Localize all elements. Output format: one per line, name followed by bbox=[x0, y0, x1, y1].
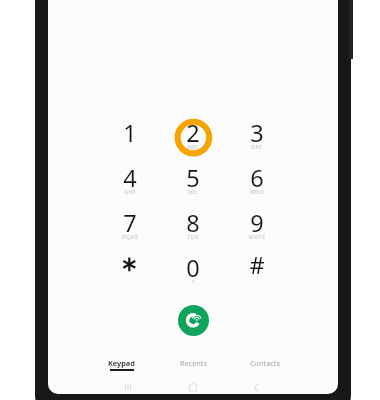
staticText: Recents bbox=[180, 358, 207, 368]
button[interactable]: 0 bbox=[162, 231, 224, 293]
button[interactable]: 3 bbox=[226, 96, 288, 158]
staticText: 6 bbox=[226, 162, 288, 194]
staticText: WXYZ bbox=[226, 233, 288, 241]
staticText: 7 bbox=[99, 207, 161, 239]
button[interactable]: Home bbox=[173, 380, 213, 394]
staticText: DEF bbox=[226, 143, 288, 151]
staticText: TUV bbox=[162, 233, 224, 241]
staticText: JKL bbox=[162, 188, 224, 196]
staticText: 3 bbox=[226, 117, 288, 149]
button[interactable]: Call bbox=[178, 305, 209, 336]
button[interactable]: 4 bbox=[99, 141, 161, 203]
button[interactable]: 9 bbox=[226, 186, 288, 248]
button[interactable]: Recent apps bbox=[108, 380, 148, 394]
staticText: 4 bbox=[99, 162, 161, 194]
staticText: GHI bbox=[99, 188, 161, 196]
staticText: 1 bbox=[99, 117, 161, 149]
button[interactable]: 1 bbox=[99, 96, 161, 158]
button[interactable]: 2 bbox=[162, 96, 224, 158]
button[interactable]: 6 bbox=[226, 141, 288, 203]
staticText: Contacts bbox=[250, 358, 280, 368]
button[interactable]: 8 bbox=[162, 186, 224, 248]
button[interactable]: # bbox=[226, 231, 288, 293]
button[interactable]: Contacts bbox=[234, 358, 296, 380]
button[interactable]: Keypad bbox=[90, 358, 152, 380]
button[interactable]: Back bbox=[236, 380, 276, 394]
staticText: 5 bbox=[162, 162, 224, 194]
staticText: MNO bbox=[226, 188, 288, 196]
staticText: Keypad bbox=[108, 358, 135, 368]
staticText: 8 bbox=[162, 207, 224, 239]
staticText: 2 bbox=[162, 117, 224, 149]
button[interactable]: 7 bbox=[99, 186, 161, 248]
button[interactable]: Recents bbox=[162, 358, 224, 380]
staticText: # bbox=[226, 249, 288, 281]
staticText: PQRS bbox=[99, 233, 161, 241]
staticText: 0 bbox=[162, 252, 224, 284]
button[interactable]: 5 bbox=[162, 141, 224, 203]
staticText: ABC bbox=[162, 143, 224, 151]
button[interactable]: star bbox=[99, 231, 161, 293]
staticText: 9 bbox=[226, 207, 288, 239]
